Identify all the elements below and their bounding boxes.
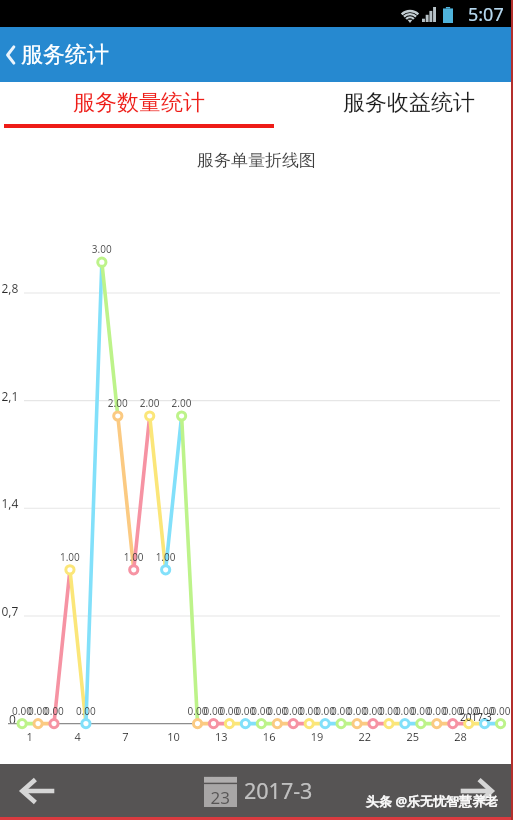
- button[interactable]: 服务收益统计: [274, 82, 513, 128]
- staticText: 服务数量统计: [73, 89, 205, 117]
- staticText: 头条 @乐无忧智慧养老: [366, 792, 499, 810]
- staticText: 2017-3: [244, 776, 313, 805]
- button[interactable]: Next month: [444, 764, 510, 817]
- button[interactable]: Previous month: [4, 764, 70, 817]
- button[interactable]: Back: [0, 27, 109, 82]
- button[interactable]: 2017-3: [204, 764, 313, 817]
- button[interactable]: 服务数量统计: [4, 82, 274, 128]
- staticText: 5:07: [468, 2, 504, 27]
- other: Back: [4, 42, 16, 68]
- staticText: 服务收益统计: [343, 89, 475, 117]
- staticText: 服务单量折线图: [197, 150, 316, 171]
- staticText: 服务统计: [21, 41, 109, 69]
